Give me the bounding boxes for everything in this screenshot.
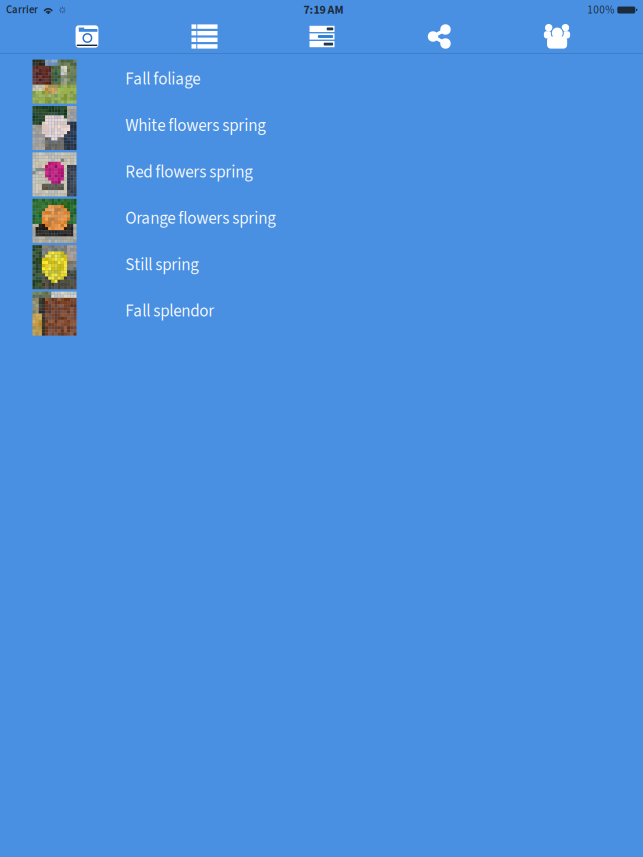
button[interactable]: White flowers spring <box>0 105 643 151</box>
button[interactable]: Red flowers spring <box>0 151 643 198</box>
button[interactable]: Camera <box>58 20 116 52</box>
button[interactable]: Share <box>410 20 468 52</box>
staticText: Carrier <box>6 2 38 18</box>
button[interactable]: Still spring <box>0 244 643 290</box>
button[interactable]: Adjustments <box>293 20 351 52</box>
button[interactable]: Fall splendor <box>0 290 643 337</box>
staticText: Still spring <box>125 253 199 277</box>
staticText: Red flowers spring <box>125 160 253 184</box>
staticText: Orange flowers spring <box>125 206 276 231</box>
button[interactable]: People <box>528 20 586 52</box>
staticText: White flowers spring <box>125 114 266 138</box>
button[interactable]: Fall foliage <box>0 58 643 105</box>
button[interactable]: Orange flowers spring <box>0 198 643 244</box>
button[interactable]: Album list <box>175 20 233 52</box>
staticText: 100% <box>587 2 614 18</box>
staticText: Fall foliage <box>125 67 200 91</box>
staticText: 7:19 AM <box>303 1 343 19</box>
staticText: Fall splendor <box>125 299 214 323</box>
